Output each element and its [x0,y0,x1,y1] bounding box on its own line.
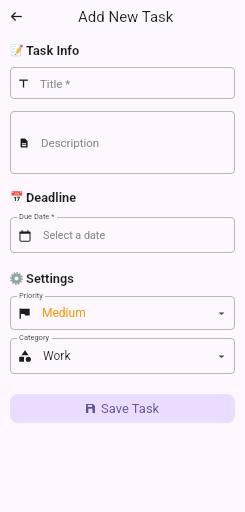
staticText: 📝 [10,44,24,57]
button[interactable]: Work [10,338,235,374]
staticText: Priority [19,291,43,300]
staticText: Deadline [26,190,77,205]
button[interactable]: Title * [10,67,235,99]
staticText: Work [43,349,71,363]
staticText: Add New Task [78,8,174,26]
button[interactable]: Save Task [10,394,235,423]
staticText: Due Date * [19,212,55,221]
staticText: 📅 [10,191,24,204]
staticText: Medium [42,306,86,320]
button[interactable]: Select a date [10,217,235,253]
staticText: Category [19,333,50,342]
staticText: Save Task [101,401,160,416]
button[interactable]: Medium [10,296,235,330]
button[interactable]: Back [6,6,27,27]
staticText: Task Info [26,43,80,58]
staticText: Description [41,136,100,149]
other: Expand Priority [218,310,225,317]
staticText: Settings [26,271,74,286]
staticText: Select a date [43,229,106,242]
staticText: Title * [40,77,71,90]
button[interactable]: Description [10,111,235,174]
other: Expand Category [218,353,225,360]
